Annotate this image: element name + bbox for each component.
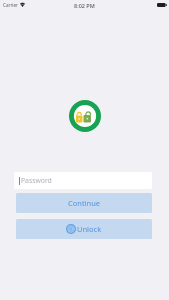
staticText: Continue: [68, 198, 101, 208]
staticText: Carrier: [3, 2, 18, 8]
staticText: Unlock: [77, 224, 102, 234]
staticText: Password: [21, 176, 52, 185]
button[interactable]: Continue: [16, 193, 152, 213]
button[interactable]: Password: [14, 172, 152, 189]
other: App logo: [69, 100, 101, 132]
button[interactable]: Unlock with fingerprint: [16, 219, 152, 239]
other: Unlock with fingerprint: [66, 224, 76, 234]
staticText: 8:02 PM: [74, 2, 95, 9]
